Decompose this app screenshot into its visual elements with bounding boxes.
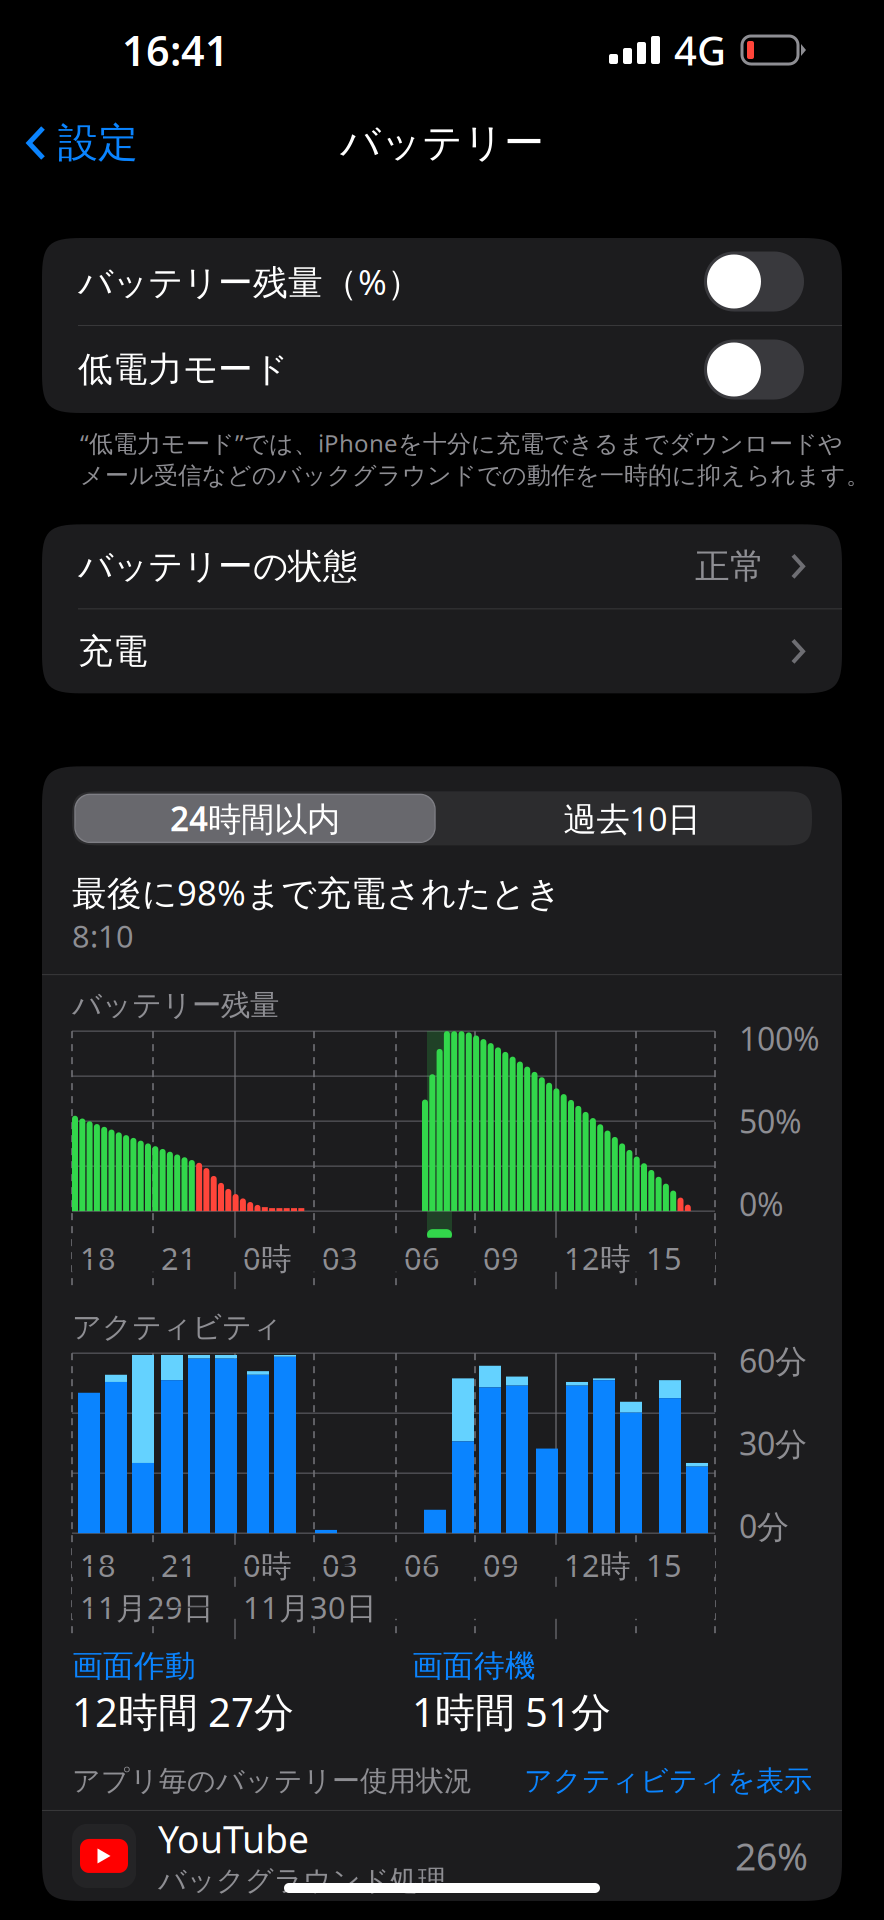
button[interactable]: Toggle — [704, 339, 804, 399]
staticText: 画面作動 — [72, 1647, 196, 1685]
staticText: 06 — [404, 1238, 440, 1278]
staticText: 21 — [161, 1545, 197, 1585]
staticText: バッテリー残量 — [72, 987, 279, 1023]
staticText: バッテリー — [340, 118, 544, 167]
staticText: 最後に98%まで充電されたとき — [72, 869, 561, 915]
button[interactable]: 低電力モード — [42, 326, 842, 413]
staticText: 0分 — [739, 1505, 789, 1547]
button[interactable]: Toggle — [704, 251, 804, 311]
staticText: バックグラウンド処理 — [158, 1863, 446, 1898]
staticText: “低電力モード”では、iPhoneを十分に充電できるまでダウンロードや — [80, 427, 843, 459]
staticText: アクティビティ — [72, 1309, 282, 1345]
staticText: 8:10 — [72, 915, 134, 956]
staticText: 12時 — [564, 1545, 631, 1585]
staticText: 11月30日 — [243, 1587, 377, 1627]
staticText: メール受信などのバックグラウンドでの動作を一時的に抑えられます。 — [80, 461, 870, 490]
button[interactable]: 設定 — [0, 113, 138, 173]
button[interactable]: 充電 — [42, 609, 842, 693]
button[interactable]: バッテリー残量（%） — [42, 238, 842, 325]
staticText: 0時 — [243, 1545, 292, 1585]
staticText: 26% — [735, 1831, 808, 1881]
staticText: 低電力モード — [78, 348, 288, 391]
staticText: 設定 — [58, 118, 138, 167]
button[interactable]: アクティビティを表示 — [524, 1764, 812, 1798]
staticText: バッテリーの状態 — [78, 545, 358, 588]
staticText: 50% — [739, 1100, 802, 1142]
staticText: 0時 — [243, 1238, 292, 1278]
staticText: アプリ毎のバッテリー使用状況 — [72, 1764, 472, 1798]
staticText: 03 — [322, 1238, 358, 1278]
staticText: 12時間 27分 — [72, 1685, 294, 1738]
staticText: 12時 — [564, 1238, 631, 1278]
staticText: 09 — [483, 1545, 519, 1585]
staticText: 09 — [483, 1238, 519, 1278]
staticText: YouTube — [158, 1814, 309, 1864]
staticText: 過去10日 — [563, 796, 700, 840]
staticText: 60分 — [739, 1339, 807, 1382]
staticText: 15 — [646, 1545, 682, 1585]
staticText: 21 — [161, 1238, 197, 1278]
staticText: 30分 — [739, 1422, 807, 1464]
staticText: 11月29日 — [80, 1587, 214, 1627]
staticText: 06 — [404, 1545, 440, 1585]
staticText: 正常 — [695, 545, 765, 588]
staticText: 4G — [674, 23, 726, 76]
staticText: 画面待機 — [412, 1647, 536, 1685]
staticText: 15 — [646, 1238, 682, 1278]
staticText: バッテリー残量（%） — [78, 258, 422, 304]
staticText: 24時間以内 — [170, 796, 340, 840]
staticText: 1時間 51分 — [412, 1685, 611, 1738]
staticText: 充電 — [78, 630, 148, 673]
button[interactable]: バッテリーの状態 — [42, 524, 842, 608]
staticText: 16:41 — [122, 23, 229, 77]
button[interactable]: 24時間以内 — [72, 794, 435, 842]
staticText: 03 — [322, 1545, 358, 1585]
staticText: 18 — [80, 1545, 116, 1585]
staticText: 18 — [80, 1238, 116, 1278]
staticText: 100% — [739, 1017, 820, 1060]
button[interactable]: YouTube — [42, 1811, 842, 1901]
button[interactable]: 過去10日 — [452, 794, 812, 842]
staticText: アクティビティを表示 — [524, 1764, 812, 1798]
staticText: 0% — [739, 1183, 784, 1225]
